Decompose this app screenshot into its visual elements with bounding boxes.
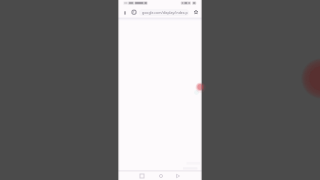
staticText: google.com/display/index.p — [142, 10, 188, 15]
button[interactable]: google.com/display/index.p — [139, 9, 189, 16]
button[interactable]: Home — [157, 171, 165, 180]
button[interactable]: Back — [174, 171, 182, 180]
button[interactable]: Recent apps — [138, 171, 146, 180]
button[interactable]: Tabs — [122, 9, 128, 17]
button[interactable]: Tabs — [118, 0, 202, 180]
button[interactable]: Search with camera — [130, 8, 138, 16]
button[interactable]: Bookmark — [192, 8, 200, 16]
